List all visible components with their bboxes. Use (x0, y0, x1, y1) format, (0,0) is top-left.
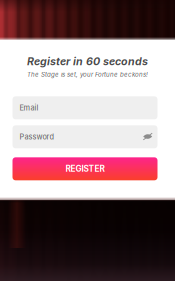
button[interactable]: REGISTER (12, 157, 162, 180)
staticText: Password (19, 132, 54, 141)
staticText: Email (19, 103, 38, 112)
staticText: REGISTER (65, 164, 104, 174)
button[interactable]: Password (12, 125, 162, 148)
button[interactable]: Email (12, 96, 162, 119)
staticText: Register in 60 seconds (27, 55, 148, 68)
staticText: The Stage is set, your Fortune beckons! (27, 71, 148, 78)
